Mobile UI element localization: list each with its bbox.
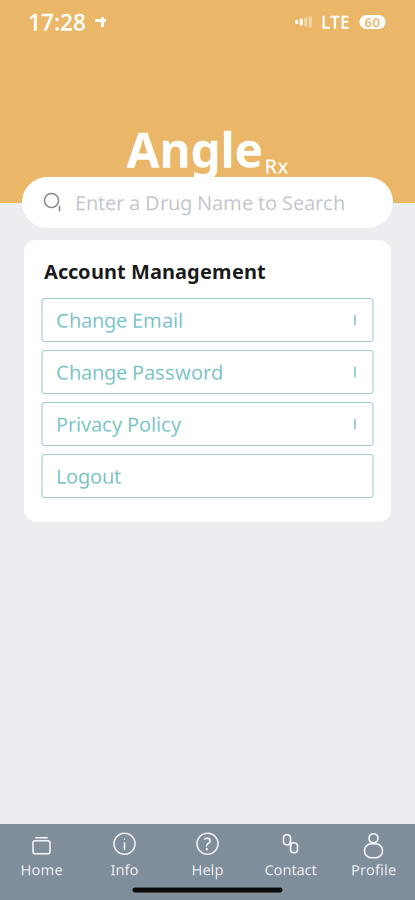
button[interactable]: Privacy Policy: [42, 403, 373, 446]
staticText: Info: [110, 860, 138, 879]
button[interactable]: Change Email: [42, 299, 373, 342]
staticText: Rx: [264, 152, 288, 179]
button[interactable]: Info: [83, 831, 166, 879]
button[interactable]: Contact: [249, 831, 332, 879]
staticText: Change Email: [56, 307, 183, 333]
staticText: Logout: [56, 463, 121, 489]
staticText: Help: [191, 860, 223, 879]
button[interactable]: Home: [0, 831, 83, 879]
staticText: LTE: [321, 10, 350, 33]
button[interactable]: Enter a Drug Name to Search: [22, 177, 393, 228]
staticText: Change Password: [56, 359, 223, 385]
staticText: 60: [364, 13, 380, 31]
button[interactable]: ?: [166, 831, 249, 879]
staticText: Angle: [126, 117, 263, 181]
button[interactable]: Logout: [42, 455, 373, 498]
button[interactable]: Profile: [332, 831, 415, 879]
staticText: 17:28: [28, 7, 86, 37]
staticText: Privacy Policy: [56, 411, 181, 437]
staticText: Home: [20, 860, 62, 879]
button[interactable]: Change Password: [42, 351, 373, 394]
staticText: ?: [203, 832, 211, 855]
staticText: Profile: [351, 860, 396, 879]
staticText: Enter a Drug Name to Search: [75, 189, 345, 216]
staticText: Contact: [264, 860, 316, 879]
staticText: Account Management: [44, 258, 266, 285]
